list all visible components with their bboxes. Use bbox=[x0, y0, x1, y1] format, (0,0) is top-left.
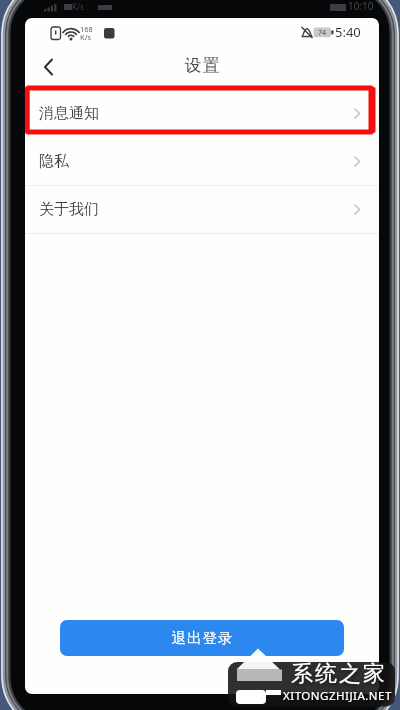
staticText: 168 bbox=[80, 24, 93, 32]
staticText: 关于我们 bbox=[39, 200, 99, 219]
staticText: 隐私 bbox=[39, 152, 69, 171]
staticText: 5:40 bbox=[335, 23, 361, 41]
staticText: K/s bbox=[72, 1, 84, 12]
staticText: 退出登录 bbox=[171, 629, 233, 647]
staticText: 设置 bbox=[184, 55, 220, 76]
staticText: 消息通知 bbox=[39, 104, 99, 123]
button[interactable] bbox=[37, 52, 61, 82]
staticText: 74 bbox=[318, 28, 327, 38]
button[interactable]: 隐私 bbox=[25, 137, 379, 185]
button[interactable]: 退出登录 bbox=[60, 620, 344, 656]
staticText: 系统之家 bbox=[290, 660, 386, 688]
staticText: K/s bbox=[80, 32, 92, 40]
button[interactable]: 消息通知 bbox=[25, 89, 379, 137]
button[interactable]: 关于我们 bbox=[25, 185, 379, 233]
staticText: 10:10 bbox=[348, 0, 374, 13]
staticText: XITONGZHIJIA.NET bbox=[283, 688, 392, 704]
